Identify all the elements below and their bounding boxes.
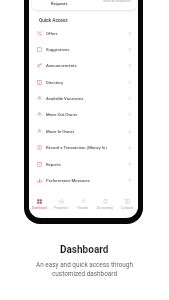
- button[interactable]: Dashboard: [29, 192, 50, 217]
- button[interactable]: Accounting: [94, 192, 116, 217]
- button[interactable]: Offers: [29, 25, 138, 41]
- staticText: Contacts: [121, 206, 134, 210]
- button[interactable]: Directory: [29, 74, 138, 90]
- staticText: Move-Out Owner: [46, 112, 78, 117]
- staticText: Available Vacancies: [46, 96, 84, 101]
- button[interactable]: Announcements: [29, 57, 138, 73]
- button[interactable]: Reports: [29, 156, 138, 172]
- staticText: Offers: [46, 31, 58, 36]
- staticText: Performance Measures: [46, 178, 90, 183]
- staticText: An easy and quick access through customi…: [36, 261, 133, 278]
- button[interactable]: Move-Out Owner: [29, 106, 138, 122]
- staticText: Move-In Owner: [46, 129, 75, 134]
- button[interactable]: Suggestions: [29, 41, 138, 57]
- staticText: Announcements: [46, 63, 77, 68]
- staticText: Dashboard: [60, 244, 109, 256]
- staticText: Accounting: [97, 206, 113, 210]
- staticText: Quick Access: [39, 18, 68, 24]
- button[interactable]: Tenants: [72, 192, 94, 217]
- button[interactable]: Record a Transaction (Money In): [29, 139, 138, 155]
- button[interactable]: Properties: [50, 192, 72, 217]
- button[interactable]: Contacts: [116, 192, 138, 217]
- button[interactable]: Performance Measures: [29, 172, 138, 188]
- staticText: Record a Transaction (Money In): [46, 145, 107, 150]
- staticText: Suggestions: [46, 47, 70, 52]
- staticText: Properties: [54, 206, 69, 210]
- staticText: Dashboard: [32, 206, 47, 210]
- staticText: Reports: [46, 162, 61, 167]
- staticText: Requests: [51, 1, 68, 6]
- staticText: View all Requests: [103, 0, 131, 3]
- button[interactable]: Available Vacancies: [29, 90, 138, 106]
- staticText: Directory: [46, 80, 63, 85]
- staticText: Tenants: [77, 206, 89, 210]
- button[interactable]: Move-In Owner: [29, 123, 138, 139]
